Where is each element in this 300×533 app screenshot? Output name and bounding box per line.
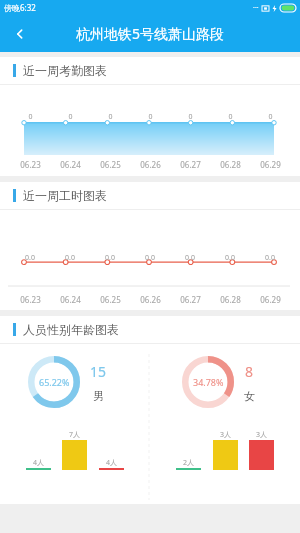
staticText: 06.28 (220, 159, 241, 170)
staticText: 0.0 (25, 253, 35, 263)
staticText: 0.0 (265, 253, 275, 263)
staticText: 06.29 (260, 159, 281, 170)
button[interactable]: Back (0, 15, 40, 52)
staticText: 15 (90, 362, 107, 381)
button[interactable]: 近一周考勤图表 (0, 57, 300, 84)
staticText: 3人 (220, 430, 232, 440)
staticText: 3人 (256, 430, 268, 440)
staticText: ··· (253, 3, 259, 13)
staticText: 杭州地铁5号线萧山路段 (76, 24, 225, 43)
staticText: 人员性别年龄图表 (23, 322, 119, 337)
staticText: 女 (244, 389, 255, 403)
staticText: 0 (28, 112, 33, 122)
staticText: 06.23 (20, 294, 41, 305)
staticText: 0 (268, 112, 273, 122)
staticText: 0.0 (105, 253, 115, 263)
staticText: 0 (188, 112, 193, 122)
button[interactable]: 人员性别年龄图表 (0, 316, 300, 343)
staticText: 06.24 (60, 159, 81, 170)
staticText: 0 (228, 112, 233, 122)
staticText: 近一周考勤图表 (23, 63, 107, 78)
staticText: 0.0 (65, 253, 75, 263)
staticText: 2人 (183, 458, 195, 468)
staticText: 06.27 (180, 294, 201, 305)
staticText: 0.0 (225, 253, 235, 263)
staticText: 06.23 (20, 159, 41, 170)
staticText: 0.0 (185, 253, 195, 263)
staticText: 0.0 (145, 253, 155, 263)
staticText: 0 (68, 112, 73, 122)
staticText: 男 (93, 389, 104, 403)
button[interactable]: 近一周工时图表 (0, 182, 300, 209)
staticText: 06.26 (140, 294, 161, 305)
staticText: 34.78% (193, 376, 224, 388)
staticText: 06.27 (180, 159, 201, 170)
staticText: 06.26 (140, 159, 161, 170)
staticText: 06.28 (220, 294, 241, 305)
staticText: 06.25 (100, 159, 121, 170)
staticText: 4人 (33, 458, 45, 468)
staticText: 近一周工时图表 (23, 188, 107, 203)
staticText: 7人 (69, 430, 81, 440)
staticText: 4人 (106, 458, 118, 468)
staticText: 65.22% (39, 376, 70, 388)
staticText: 06.25 (100, 294, 121, 305)
staticText: 06.29 (260, 294, 281, 305)
staticText: 0 (108, 112, 113, 122)
staticText: 傍晚6:32 (4, 2, 36, 13)
staticText: 0 (148, 112, 153, 122)
staticText: 8 (245, 362, 254, 381)
staticText: 06.24 (60, 294, 81, 305)
